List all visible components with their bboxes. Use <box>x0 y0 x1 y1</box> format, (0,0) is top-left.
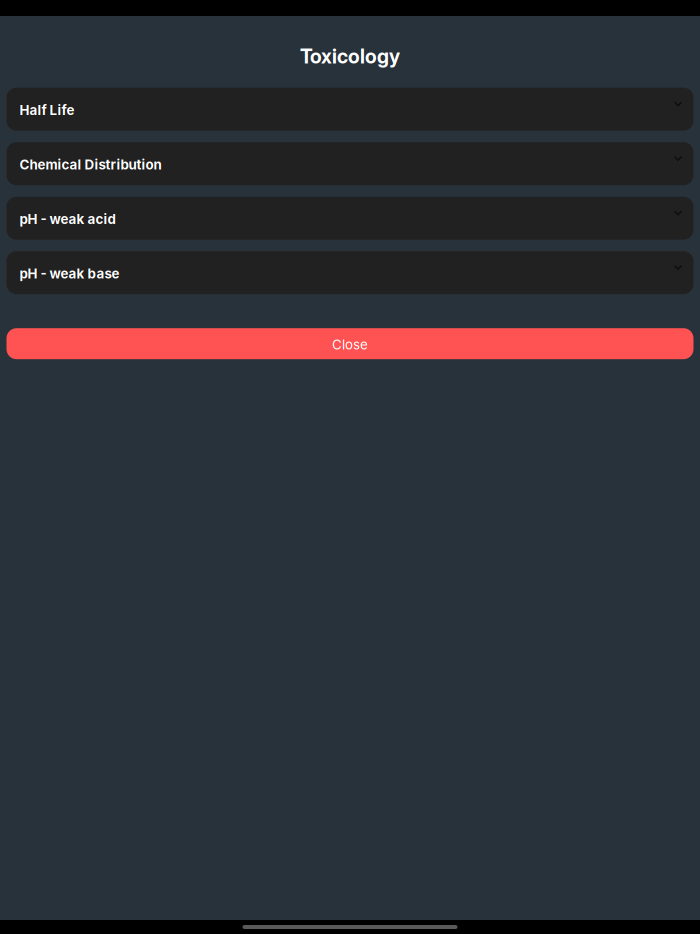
button[interactable]: pH - weak base <box>6 251 693 294</box>
staticText: pH - weak acid <box>19 211 115 227</box>
button[interactable]: pH - weak acid <box>6 197 693 240</box>
button[interactable]: Half Life <box>6 88 693 131</box>
staticText: Close <box>332 337 368 353</box>
staticText: pH - weak base <box>19 266 119 282</box>
button[interactable]: Chemical Distribution <box>6 142 693 185</box>
staticText: Toxicology <box>300 44 400 68</box>
staticText: Chemical Distribution <box>19 157 161 173</box>
button[interactable]: Close <box>6 328 693 359</box>
staticText: Half Life <box>19 102 74 118</box>
